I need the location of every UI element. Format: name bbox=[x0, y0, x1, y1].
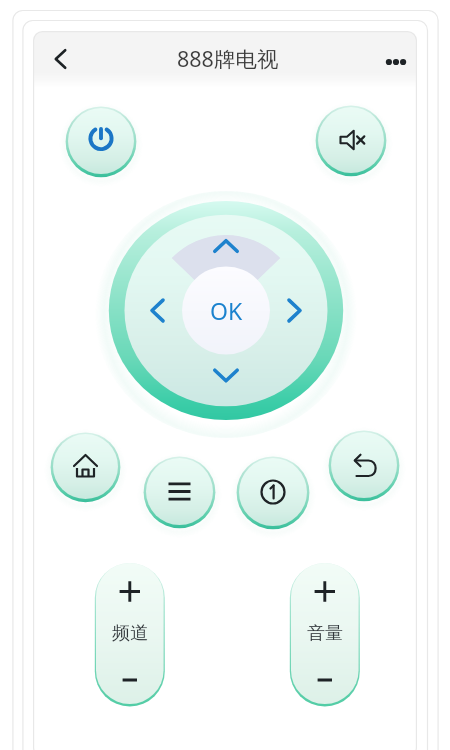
button[interactable]: 音量 bbox=[282, 554, 368, 713]
button[interactable]: 频道 bbox=[87, 554, 173, 713]
button[interactable]: Return bbox=[322, 423, 406, 507]
staticText: 音量 bbox=[307, 622, 343, 645]
button[interactable]: Home bbox=[44, 425, 127, 508]
button[interactable]: Back bbox=[38, 37, 82, 81]
button[interactable]: More options bbox=[374, 40, 417, 84]
button[interactable]: Power bbox=[59, 99, 143, 183]
staticText: 888牌电视 bbox=[177, 44, 279, 73]
button[interactable]: Mute bbox=[309, 98, 393, 182]
button[interactable]: Menu bbox=[137, 449, 222, 534]
staticText: 频道 bbox=[112, 622, 148, 645]
button[interactable]: Number bbox=[230, 449, 316, 535]
staticText: OK bbox=[210, 295, 243, 326]
